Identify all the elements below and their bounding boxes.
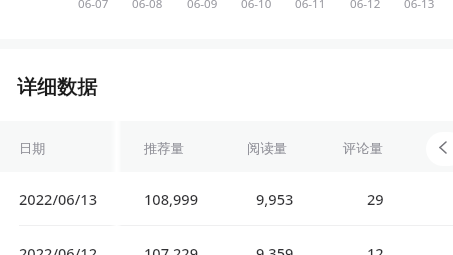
staticText: 06-07 bbox=[78, 0, 109, 12]
staticText: 日期 bbox=[19, 140, 46, 157]
staticText: 06-10 bbox=[241, 0, 272, 12]
staticText: 06-13 bbox=[404, 0, 435, 12]
button[interactable]: 2022/06/12 row bbox=[0, 226, 453, 255]
staticText: 06-08 bbox=[132, 0, 163, 12]
staticText: 108,999 bbox=[144, 189, 199, 209]
staticText: 9,953 bbox=[256, 189, 294, 209]
staticText: 2022/06/13 bbox=[19, 189, 98, 209]
staticText: 06-09 bbox=[187, 0, 218, 12]
staticText: 9,359 bbox=[256, 243, 294, 255]
staticText: 29 bbox=[367, 189, 384, 209]
staticText: 06-12 bbox=[350, 0, 381, 12]
staticText: 06-11 bbox=[295, 0, 326, 12]
staticText: 详细数据 bbox=[17, 75, 97, 100]
staticText: 推荐量 bbox=[144, 140, 184, 157]
button[interactable]: 2022/06/13 row bbox=[0, 172, 453, 225]
staticText: 评论量 bbox=[343, 140, 383, 157]
button[interactable]: Scroll table left bbox=[426, 132, 453, 166]
staticText: 12 bbox=[367, 243, 384, 255]
staticText: 阅读量 bbox=[247, 140, 287, 157]
staticText: 2022/06/12 bbox=[19, 243, 98, 255]
staticText: 107,229 bbox=[144, 243, 199, 255]
